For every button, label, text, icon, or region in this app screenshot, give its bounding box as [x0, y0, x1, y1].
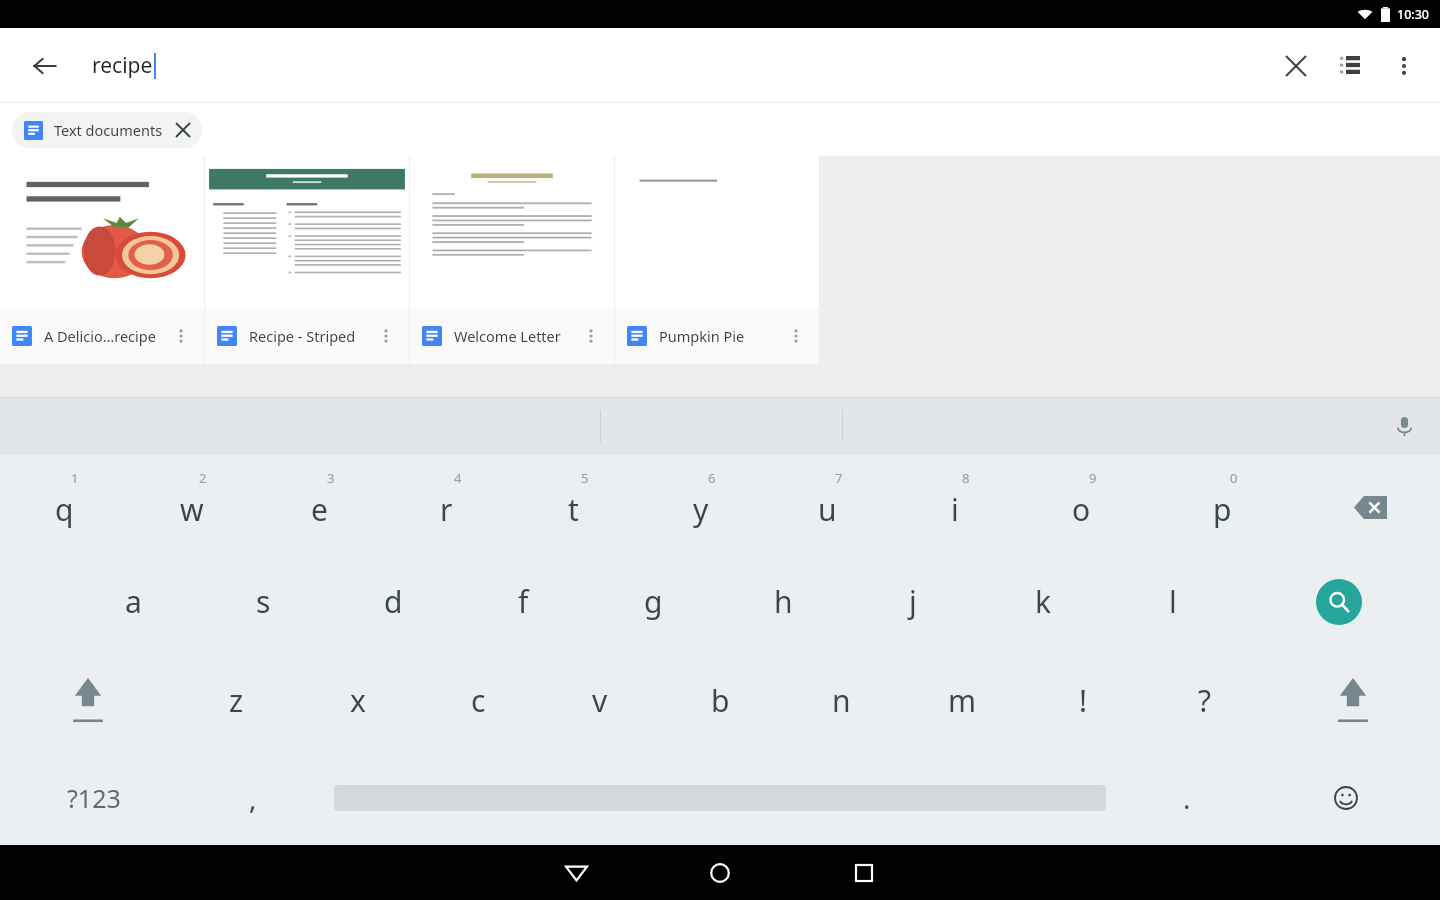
staticText: recipe — [92, 51, 153, 80]
button[interactable]: 2 — [128, 455, 256, 552]
button[interactable]: . — [1122, 750, 1252, 845]
button[interactable]: Space — [318, 750, 1122, 845]
staticText: 9 — [1089, 469, 1097, 487]
button[interactable]: Document options — [371, 321, 401, 351]
button[interactable]: , — [188, 750, 318, 845]
button[interactable]: Shift — [0, 651, 176, 750]
button[interactable]: 4 — [383, 455, 510, 552]
staticText: 0 — [1230, 469, 1238, 487]
button[interactable]: ? — [1144, 651, 1265, 750]
staticText: n — [832, 680, 851, 721]
button[interactable]: z — [176, 651, 297, 750]
staticText: , — [249, 779, 257, 817]
button[interactable]: j — [848, 552, 978, 651]
staticText: j — [909, 581, 917, 622]
button[interactable]: Document options — [576, 321, 606, 351]
button[interactable]: Recent apps — [828, 845, 900, 900]
staticText: Welcome Letter — [454, 326, 561, 346]
staticText: 4 — [454, 469, 462, 487]
staticText: 1 — [71, 469, 79, 487]
button[interactable]: 5 — [510, 455, 637, 552]
button[interactable]: Document options — [781, 321, 811, 351]
button[interactable]: Search — [1238, 552, 1440, 651]
staticText: i — [951, 489, 959, 530]
button[interactable]: d — [328, 552, 458, 651]
button[interactable]: Back — [22, 43, 68, 89]
button[interactable]: Emoji — [1252, 750, 1440, 845]
staticText: ?123 — [67, 781, 121, 815]
staticText: . — [1183, 779, 1191, 817]
staticText: v — [592, 680, 608, 721]
staticText: h — [774, 581, 793, 622]
button[interactable]: ?123 — [0, 750, 188, 845]
staticText: s — [256, 581, 271, 622]
staticText: o — [1072, 489, 1091, 530]
staticText: 7 — [835, 469, 843, 487]
button[interactable]: 7 — [764, 455, 891, 552]
staticText: 5 — [581, 469, 589, 487]
button[interactable]: h — [718, 552, 848, 651]
staticText: z — [229, 680, 244, 721]
staticText: Text documents — [54, 120, 163, 140]
staticText: q — [55, 489, 74, 530]
button[interactable]: x — [297, 651, 418, 750]
button[interactable]: Recipe - Striped — [205, 156, 409, 364]
button[interactable]: g — [588, 552, 718, 651]
staticText: x — [350, 680, 366, 721]
staticText: a — [125, 581, 142, 622]
staticText: t — [568, 489, 579, 530]
staticText: g — [644, 581, 663, 622]
button[interactable]: Backspace — [1300, 455, 1440, 552]
button[interactable]: A Delicio…recipe — [0, 156, 204, 364]
staticText: f — [518, 581, 529, 622]
button[interactable]: c — [418, 651, 539, 750]
staticText: 6 — [708, 469, 716, 487]
staticText: A Delicio…recipe — [44, 326, 156, 346]
staticText: Pumpkin Pie — [659, 326, 745, 346]
button[interactable]: 1 — [0, 455, 128, 552]
staticText: ! — [1079, 680, 1088, 721]
staticText: ? — [1198, 680, 1212, 721]
staticText: d — [384, 581, 403, 622]
staticText: p — [1213, 489, 1232, 530]
button[interactable]: Shift — [1265, 651, 1440, 750]
button[interactable]: f — [458, 552, 588, 651]
button[interactable]: Welcome Letter — [410, 156, 614, 364]
button[interactable]: More options — [1380, 42, 1428, 90]
button[interactable]: b — [660, 651, 781, 750]
button[interactable]: v — [539, 651, 660, 750]
button[interactable]: Back — [540, 845, 612, 900]
staticText: w — [180, 489, 204, 530]
staticText: k — [1035, 581, 1052, 622]
staticText: Recipe - Striped — [249, 326, 356, 346]
staticText: 10:30 — [1397, 6, 1430, 23]
staticText: 2 — [199, 469, 207, 487]
button[interactable]: m — [902, 651, 1023, 750]
button[interactable]: 9 — [1018, 455, 1145, 552]
staticText: m — [948, 680, 977, 721]
button[interactable]: 0 — [1145, 455, 1300, 552]
button[interactable]: Clear search — [1272, 42, 1320, 90]
staticText: u — [818, 489, 837, 530]
button[interactable]: Home — [684, 845, 756, 900]
staticText: c — [471, 680, 486, 721]
button[interactable]: a — [68, 552, 198, 651]
staticText: y — [693, 489, 709, 530]
button[interactable]: Document options — [166, 321, 196, 351]
button[interactable]: List view — [1326, 42, 1374, 90]
button[interactable]: Text documents — [12, 112, 202, 148]
staticText: r — [440, 489, 453, 530]
button[interactable]: ! — [1023, 651, 1144, 750]
staticText: e — [311, 489, 328, 530]
button[interactable]: l — [1108, 552, 1238, 651]
button[interactable]: k — [978, 552, 1108, 651]
staticText: 3 — [327, 469, 335, 487]
staticText: 8 — [962, 469, 970, 487]
button[interactable]: n — [781, 651, 902, 750]
button[interactable]: Voice input — [1382, 404, 1426, 448]
button[interactable]: 8 — [891, 455, 1018, 552]
button[interactable]: 6 — [637, 455, 764, 552]
button[interactable]: 3 — [256, 455, 383, 552]
button[interactable]: Pumpkin Pie — [615, 156, 819, 364]
button[interactable]: s — [198, 552, 328, 651]
